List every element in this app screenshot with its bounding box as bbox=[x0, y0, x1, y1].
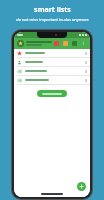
staticText: do not miss important to-dos anymore bbox=[16, 17, 89, 22]
button[interactable] bbox=[37, 90, 67, 97]
button[interactable] bbox=[14, 58, 90, 66]
button[interactable] bbox=[14, 76, 90, 84]
button[interactable] bbox=[14, 49, 90, 57]
button[interactable]: Flags bbox=[62, 40, 69, 47]
button[interactable]: More options bbox=[80, 40, 87, 47]
button[interactable] bbox=[14, 67, 90, 75]
button[interactable]: Filter bbox=[71, 40, 78, 47]
button[interactable]: Add list bbox=[77, 182, 86, 191]
button[interactable]: Alerts bbox=[53, 40, 60, 47]
button[interactable]: Profile bbox=[17, 40, 24, 47]
staticText: smart lists bbox=[34, 5, 71, 15]
